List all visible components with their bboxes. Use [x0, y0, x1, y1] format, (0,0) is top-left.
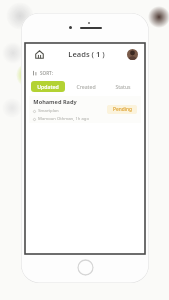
staticText: Leads ( 1 ) — [68, 49, 105, 59]
staticText: Smartplan — [38, 108, 59, 114]
other: Home button — [77, 259, 94, 276]
button[interactable]: Home — [32, 47, 46, 61]
button[interactable]: Created — [67, 81, 104, 92]
staticText: SORT: — [40, 70, 53, 76]
button[interactable]: Updated — [31, 81, 65, 92]
button[interactable]: Profile — [127, 49, 138, 60]
button[interactable]: Mohamed Rady — [29, 96, 141, 123]
staticText: Mohamed Rady — [33, 98, 77, 106]
staticText: Status — [115, 83, 131, 90]
staticText: Created — [76, 83, 96, 90]
button[interactable]: Status — [104, 81, 141, 92]
staticText: Pending — [113, 106, 132, 113]
staticText: Mamoun Othman, 1h ago — [38, 116, 89, 122]
staticText: Updated — [37, 83, 59, 90]
button[interactable]: SORT: — [32, 68, 53, 77]
